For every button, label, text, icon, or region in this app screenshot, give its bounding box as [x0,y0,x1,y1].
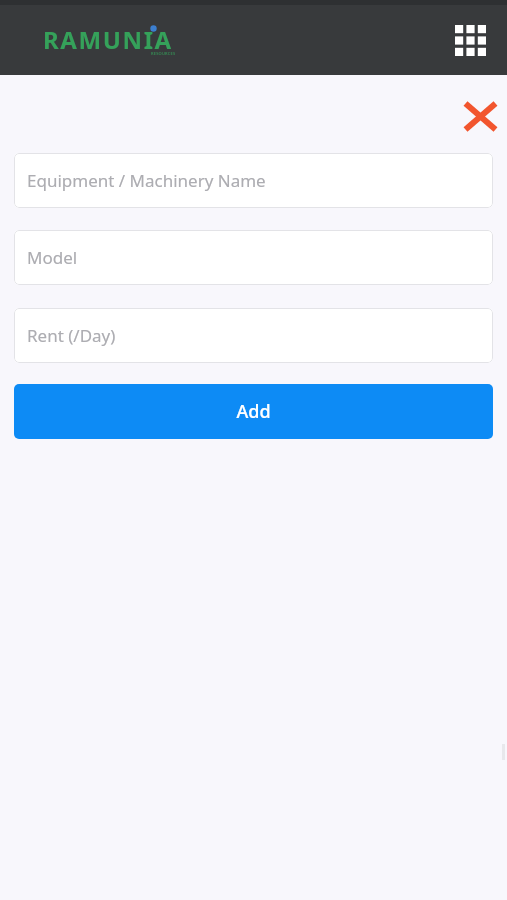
button[interactable]: Close [456,92,504,140]
staticText: Model [27,246,78,269]
button[interactable]: Rent (/Day) [14,308,493,363]
button[interactable]: Equipment / Machinery Name [14,153,493,208]
staticText: RESOURCES [151,51,176,56]
staticText: Equipment / Machinery Name [27,169,266,192]
button[interactable]: Apps menu [450,20,490,60]
button[interactable]: Add [14,384,493,439]
staticText: Rent (/Day) [27,324,116,347]
staticText: Add [236,399,271,424]
button[interactable]: Model [14,230,493,285]
button[interactable]: RAMUNIA [40,21,194,59]
staticText: RAMUNIA [43,23,173,56]
